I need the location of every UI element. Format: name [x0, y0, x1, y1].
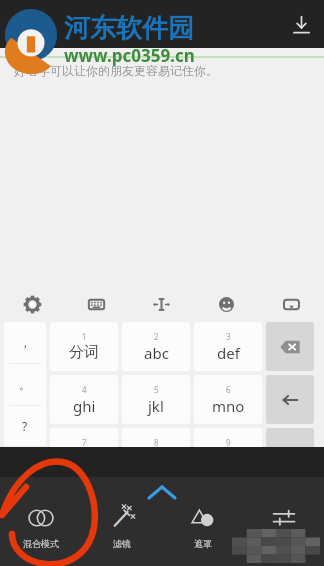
button[interactable]: ， [4, 322, 46, 363]
staticText: pqrs [68, 449, 100, 469]
staticText: 7 [82, 437, 87, 448]
staticText: 9 [226, 437, 231, 448]
button[interactable]: Download [278, 1, 324, 47]
staticText: 2 [154, 331, 159, 342]
button[interactable]: Panel [259, 288, 324, 320]
staticText: 混合模式 [23, 538, 59, 549]
button[interactable]: ? [4, 406, 46, 446]
staticText: 滤镜 [113, 538, 131, 549]
button[interactable]: Adjust [243, 505, 324, 563]
button[interactable]: 。 [4, 364, 46, 405]
button[interactable]: Back [0, 1, 46, 47]
button[interactable]: Text cursor [129, 288, 194, 320]
button[interactable]: Emoji [194, 288, 259, 320]
button[interactable]: Backspace [266, 322, 314, 371]
staticText: 河东软件园 [64, 12, 194, 45]
button[interactable]: 8 [122, 428, 190, 477]
staticText: 4 [82, 384, 87, 395]
staticText: 6 [226, 384, 231, 395]
button[interactable]: 混合模式 [0, 505, 81, 563]
button[interactable]: Keyboard layout [64, 288, 129, 320]
staticText: jkl [148, 396, 164, 416]
button[interactable]: 滤镜 [81, 505, 162, 563]
staticText: ghi [73, 396, 96, 416]
staticText: www.pc0359.cn [64, 44, 195, 67]
button[interactable]: Settings [0, 288, 64, 320]
button[interactable]: Enter [266, 428, 314, 477]
button[interactable]: Expand [134, 483, 190, 501]
button[interactable]: 3 [194, 322, 262, 371]
button[interactable]: 2 [122, 322, 190, 371]
staticText: abc [144, 343, 169, 363]
button[interactable]: 7 [50, 428, 118, 477]
button[interactable]: Enter [266, 375, 314, 424]
staticText: ? [22, 418, 28, 434]
staticText: 分词 [69, 343, 99, 362]
button[interactable]: 6 [194, 375, 262, 424]
staticText: 好名字可以让你的朋友更容易记住你。 [14, 63, 218, 78]
staticText: 。 [19, 377, 31, 392]
staticText: 3 [226, 331, 231, 342]
staticText: 5 [154, 384, 159, 395]
button[interactable]: 1 [50, 322, 118, 371]
staticText: mno [212, 396, 245, 416]
staticText: ， [19, 335, 31, 350]
staticText: 8 [154, 437, 159, 448]
staticText: 遮罩 [194, 538, 212, 549]
staticText: def [217, 343, 240, 363]
staticText: 1 [82, 331, 87, 342]
button[interactable]: 5 [122, 375, 190, 424]
button[interactable]: 4 [50, 375, 118, 424]
button[interactable]: 9 [194, 428, 262, 477]
button[interactable]: 遮罩 [162, 505, 243, 563]
